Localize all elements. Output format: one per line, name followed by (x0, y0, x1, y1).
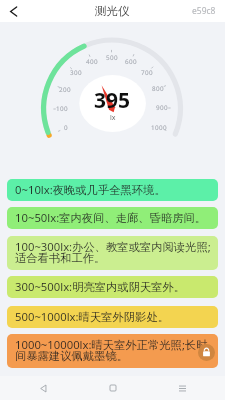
button[interactable]: Lock (198, 344, 215, 361)
button[interactable]: Home (106, 381, 120, 395)
staticText: 1000~10000lx:晴天室外正常光照;长时 间暴露建议佩戴墨镜。 (15, 337, 208, 364)
button[interactable]: 500~1000lx:晴天室外阴影处。 (7, 306, 218, 328)
staticText: 395 (94, 86, 131, 115)
staticText: 100~300lx:办公、教室或室内阅读光照; 适合看书和工作。 (15, 239, 211, 266)
button[interactable]: 100~300lx:办公、教室或室内阅读光照; 适合看书和工作。 (7, 236, 218, 270)
staticText: 测光仪 (95, 4, 130, 18)
button[interactable]: 10~50lx:室内夜间、走廊、昏暗房间。 (7, 207, 218, 229)
button[interactable]: Back (4, 2, 22, 20)
button[interactable]: 1000~10000lx:晴天室外正常光照;长时 间暴露建议佩戴墨镜。 (7, 334, 218, 368)
staticText: e59c8 (192, 5, 216, 17)
button[interactable]: 300~500lx:明亮室内或阴天室外。 (7, 276, 218, 298)
staticText: 0~10lx:夜晚或几乎全黑环境。 (15, 182, 166, 197)
staticText: 500~1000lx:晴天室外阴影处。 (15, 309, 169, 324)
button[interactable]: Recents (175, 381, 189, 395)
button[interactable]: Back (36, 381, 50, 395)
staticText: 300~500lx:明亮室内或阴天室外。 (15, 279, 186, 294)
staticText: lx (110, 113, 116, 123)
staticText: 10~50lx:室内夜间、走廊、昏暗房间。 (15, 210, 207, 225)
button[interactable]: 0~10lx:夜晚或几乎全黑环境。 (7, 179, 218, 201)
